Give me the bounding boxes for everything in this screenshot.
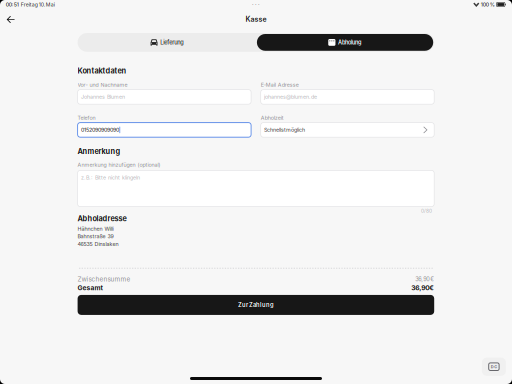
staticText: Freitag 10. Mai (19, 1, 55, 8)
staticText: D (491, 364, 494, 369)
staticText: 00:51 (6, 1, 19, 8)
button[interactable]: Lieferung (78, 33, 256, 52)
staticText: • • • (252, 2, 260, 9)
staticText: C (494, 364, 497, 369)
staticText: Zur Zahlung (238, 301, 274, 308)
staticText: Gesamt (78, 284, 103, 292)
staticText: z.B.: Bitte nicht klingeln (81, 174, 140, 181)
staticText: Anmerkung (78, 147, 121, 156)
button[interactable]: Zurück (2, 10, 20, 28)
staticText: E-Mail Adresse (261, 81, 299, 88)
staticText: Vor- und Nachname (78, 81, 128, 88)
button[interactable]: Schnellstmöglich (261, 123, 434, 137)
staticText: 100 % (481, 1, 495, 8)
staticText: Abholzeit (261, 114, 284, 121)
button[interactable]: Zur Zahlung (78, 295, 434, 315)
staticText: Telefon (78, 114, 96, 121)
staticText: Schnellstmöglich (264, 127, 305, 133)
button[interactable]: Tastatur ausblenden (482, 358, 506, 376)
staticText: 46535 Dinslaken (78, 241, 119, 247)
staticText: Hähnchen Willi (78, 226, 114, 232)
staticText: Kontaktdaten (78, 66, 127, 75)
staticText: Kasse (245, 15, 266, 23)
staticText: 36,90€ (411, 284, 434, 292)
staticText: 0/80 (421, 208, 432, 214)
staticText: Johannes Blumen (81, 94, 125, 100)
button[interactable]: Abholung (256, 33, 434, 52)
staticText: Anmerkung hinzufügen (optional) (78, 161, 161, 168)
staticText: Lieferung (160, 39, 183, 46)
staticText: johannes@blumen.de (264, 94, 317, 100)
staticText: 36,90€ (415, 276, 434, 282)
staticText: 0152090909090 (81, 127, 119, 133)
staticText: Abholung (338, 39, 362, 46)
staticText: Abholadresse (78, 214, 127, 223)
staticText: Bahnstraße 39 (78, 233, 114, 240)
staticText: Zwischensumme (78, 275, 131, 283)
